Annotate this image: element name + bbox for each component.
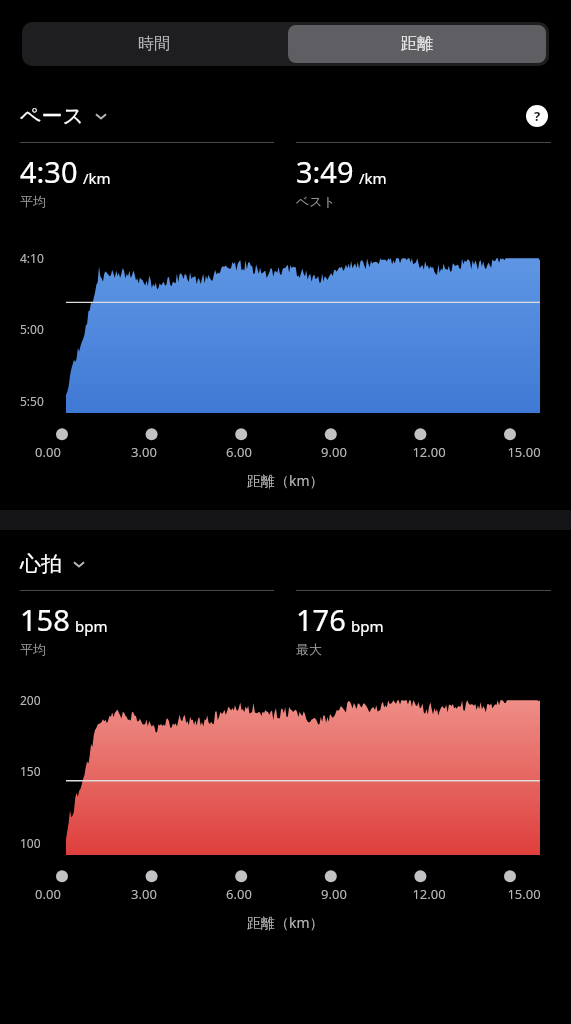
staticText: 3:49 [296, 152, 354, 191]
button[interactable]: ペース [20, 103, 110, 129]
staticText: /km [83, 168, 111, 188]
staticText: 6.00 [226, 885, 252, 903]
button[interactable]: ヘルプ [523, 102, 551, 130]
staticText: bpm [75, 616, 108, 636]
button[interactable]: 176 [296, 590, 551, 657]
staticText: 距離 [401, 34, 433, 54]
staticText: 12.00 [412, 885, 446, 903]
staticText: 15.00 [507, 443, 541, 461]
button[interactable]: 心拍 [20, 551, 88, 577]
staticText: 12.00 [412, 443, 446, 461]
staticText: 3.00 [131, 443, 157, 461]
staticText: bpm [351, 616, 384, 636]
staticText: 4:30 [20, 152, 78, 191]
staticText: 100 [20, 835, 41, 851]
button[interactable]: 3:49 [296, 142, 551, 209]
staticText: 平均 [20, 641, 46, 657]
staticText: 200 [20, 692, 41, 708]
staticText: 0.00 [35, 885, 61, 903]
staticText: 6.00 [226, 443, 252, 461]
staticText: 176 [296, 600, 346, 639]
staticText: 3.00 [131, 885, 157, 903]
button[interactable]: 時間 [22, 22, 285, 66]
button[interactable]: 距離 [288, 25, 546, 63]
staticText: 5:00 [20, 321, 44, 337]
staticText: 距離（km） [247, 913, 324, 932]
staticText: ? [534, 107, 541, 125]
staticText: 9.00 [321, 443, 347, 461]
button[interactable]: 158 [20, 590, 274, 657]
staticText: 距離（km） [247, 471, 324, 490]
staticText: 9.00 [321, 885, 347, 903]
staticText: 最大 [296, 641, 322, 657]
staticText: 158 [20, 600, 70, 639]
staticText: ペース [20, 103, 84, 129]
staticText: 150 [20, 763, 41, 779]
button[interactable]: 4:30 [20, 142, 274, 209]
staticText: /km [359, 168, 387, 188]
staticText: 4:10 [20, 250, 44, 266]
staticText: 平均 [20, 193, 46, 209]
staticText: 0.00 [35, 443, 61, 461]
staticText: ベスト [296, 193, 336, 209]
staticText: 時間 [138, 34, 170, 54]
staticText: 5:50 [20, 393, 44, 409]
staticText: 15.00 [507, 885, 541, 903]
staticText: 心拍 [20, 551, 62, 577]
